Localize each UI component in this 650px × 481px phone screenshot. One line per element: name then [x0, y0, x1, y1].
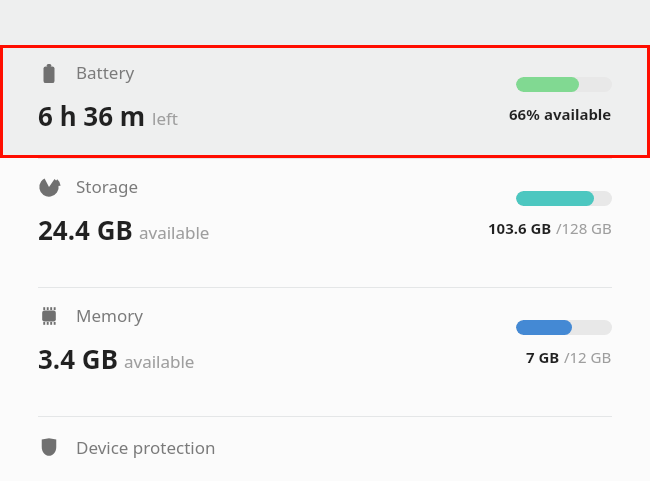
staticText: 6 h 36 m [38, 98, 146, 133]
staticText: Battery [76, 61, 135, 84]
other: Device protection [38, 436, 60, 458]
button[interactable]: Storage [0, 159, 650, 287]
staticText: 24.4 GB [38, 212, 133, 247]
other: Memory [38, 305, 60, 327]
staticText: Device protection [76, 436, 216, 459]
staticText: 3.4 GB [38, 341, 118, 376]
staticText: Storage [76, 175, 139, 198]
button[interactable]: Battery [0, 45, 650, 158]
button[interactable]: Memory [0, 288, 650, 416]
other: Battery [38, 62, 60, 84]
other: Storage [38, 176, 60, 198]
staticText: 66% [509, 104, 540, 124]
button[interactable]: Device protection [0, 417, 650, 477]
staticText: /12 GB [560, 347, 612, 367]
staticText: available [139, 221, 210, 244]
staticText: /128 GB [552, 218, 612, 238]
staticText: Memory [76, 304, 143, 327]
staticText: 7 GB [526, 347, 560, 367]
staticText: left [152, 107, 178, 130]
staticText: 103.6 GB [488, 218, 552, 238]
staticText: available [540, 104, 612, 124]
staticText: available [124, 350, 195, 373]
